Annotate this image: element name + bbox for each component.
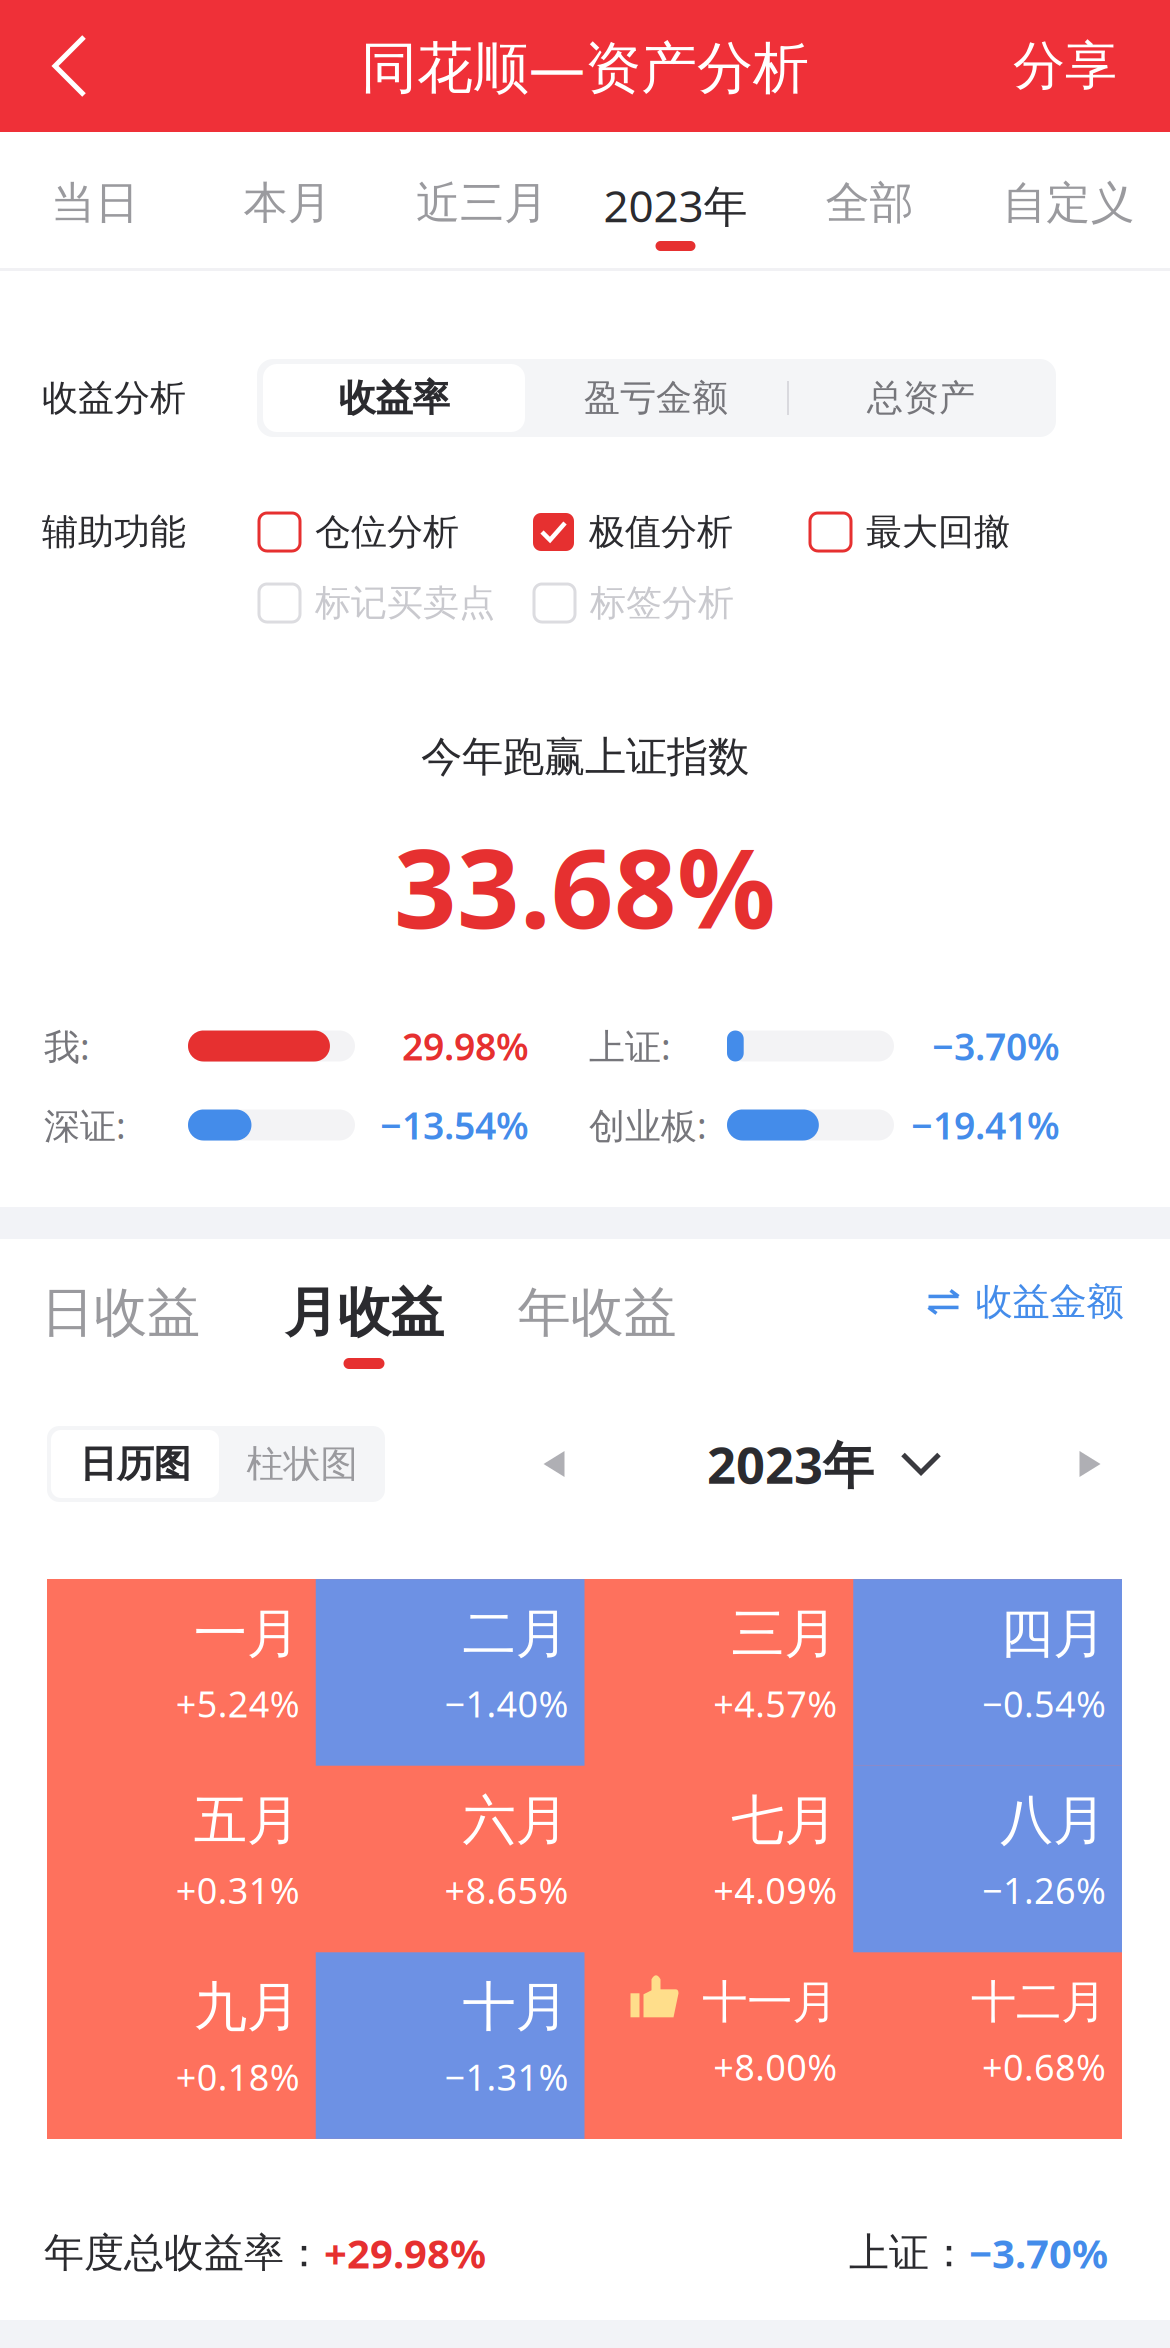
staticText: 五月: [194, 1788, 300, 1853]
staticText: 辅助功能: [42, 510, 186, 554]
staticText: 收益率: [338, 375, 449, 421]
button[interactable]: 极值分析: [533, 503, 810, 561]
staticText: 六月: [462, 1788, 568, 1853]
button[interactable]: 月收益: [283, 1269, 445, 1381]
staticText: −3.70%: [932, 1021, 1060, 1071]
staticText: 日收益: [41, 1280, 200, 1345]
button[interactable]: 八月: [853, 1766, 1122, 1952]
staticText: 二月: [462, 1601, 568, 1667]
button[interactable]: 柱状图: [219, 1430, 385, 1498]
staticText: 七月: [731, 1788, 837, 1853]
button[interactable]: 收益金额: [925, 1269, 1170, 1381]
staticText: −1.40%: [444, 1680, 568, 1727]
button[interactable]: 日历图: [51, 1430, 219, 1498]
staticText: 29.98%: [402, 1021, 529, 1071]
button[interactable]: 总资产: [789, 364, 1053, 432]
staticText: 标记买卖点: [315, 581, 495, 625]
staticText: 极值分析: [589, 510, 733, 554]
button[interactable]: 标记买卖点: [259, 574, 534, 632]
button[interactable]: 盈亏金额: [525, 364, 787, 432]
staticText: 年度总收益率：: [44, 2228, 324, 2277]
staticText: 月收益: [284, 1280, 443, 1345]
button[interactable]: Back: [0, 0, 180, 132]
staticText: 日历图: [79, 1441, 190, 1487]
button[interactable]: 日收益: [38, 1269, 203, 1381]
button[interactable]: 最大回撤: [810, 503, 1090, 561]
staticText: 今年跑赢上证指数: [421, 732, 749, 782]
staticText: 标签分析: [590, 581, 734, 625]
staticText: −13.54%: [380, 1100, 529, 1150]
staticText: 分享: [1013, 34, 1117, 98]
button[interactable]: 分享: [990, 0, 1170, 132]
staticText: 盈亏金额: [584, 376, 728, 420]
staticText: 深证:: [44, 1101, 126, 1149]
staticText: 十一月: [702, 1974, 837, 2030]
staticText: 33.68%: [394, 813, 776, 959]
staticText: −0.54%: [982, 1680, 1106, 1727]
button[interactable]: 标签分析: [534, 574, 811, 632]
button[interactable]: 本月: [190, 133, 385, 267]
button[interactable]: 当日: [0, 133, 190, 267]
staticText: 上证:: [589, 1022, 671, 1070]
button[interactable]: 五月: [47, 1766, 316, 1952]
staticText: 柱状图: [246, 1441, 357, 1487]
staticText: 十二月: [971, 1974, 1106, 2030]
button[interactable]: 十月: [316, 1952, 585, 2139]
button[interactable]: 十二月: [853, 1952, 1122, 2139]
staticText: 收益金额: [975, 1279, 1123, 1325]
staticText: 自定义: [1002, 176, 1134, 230]
staticText: +0.18%: [176, 2053, 300, 2101]
staticText: 一月: [194, 1601, 300, 1667]
staticText: +4.57%: [713, 1680, 837, 1727]
staticText: 上证：: [849, 2228, 969, 2277]
staticText: 当日: [51, 176, 139, 230]
staticText: 2023年: [603, 176, 747, 234]
staticText: 总资产: [867, 376, 975, 420]
staticText: 2023年: [707, 1430, 874, 1498]
staticText: 最大回撤: [866, 510, 1010, 554]
staticText: +0.68%: [982, 2043, 1106, 2091]
button[interactable]: 自定义: [967, 133, 1170, 267]
button[interactable]: 收益率: [263, 364, 525, 432]
staticText: +4.09%: [713, 1866, 837, 1914]
staticText: 十月: [462, 1974, 568, 2040]
button[interactable]: Previous year: [516, 1426, 592, 1502]
button[interactable]: 年收益: [514, 1269, 680, 1381]
staticText: −1.26%: [982, 1866, 1106, 1914]
staticText: 同花顺—资产分析: [361, 29, 809, 103]
button[interactable]: 二月: [316, 1579, 585, 1766]
button[interactable]: 近三月: [385, 133, 579, 267]
staticText: −1.31%: [444, 2053, 568, 2101]
button[interactable]: 全部: [772, 133, 967, 267]
button[interactable]: 一月: [47, 1579, 316, 1766]
staticText: −19.41%: [911, 1100, 1060, 1150]
button[interactable]: 九月: [47, 1952, 316, 2139]
staticText: 全部: [825, 176, 913, 230]
staticText: 近三月: [416, 176, 548, 230]
staticText: +29.98%: [324, 2226, 486, 2279]
button[interactable]: 七月: [584, 1766, 853, 1952]
button[interactable]: 2023年: [707, 1426, 942, 1502]
staticText: 本月: [243, 176, 331, 230]
staticText: +8.65%: [444, 1866, 568, 1914]
button[interactable]: 十一月: [584, 1952, 853, 2139]
staticText: +5.24%: [176, 1680, 300, 1727]
staticText: 我:: [44, 1022, 90, 1070]
staticText: +8.00%: [713, 2043, 837, 2091]
staticText: 仓位分析: [315, 510, 459, 554]
staticText: 四月: [1000, 1601, 1106, 1667]
staticText: +0.31%: [176, 1866, 300, 1914]
button[interactable]: 2023年: [579, 133, 772, 267]
button[interactable]: Next year: [1052, 1426, 1128, 1502]
staticText: 八月: [1000, 1788, 1106, 1853]
button[interactable]: 六月: [316, 1766, 585, 1952]
button[interactable]: 三月: [584, 1579, 853, 1766]
staticText: −3.70%: [969, 2226, 1108, 2279]
staticText: 九月: [194, 1974, 300, 2040]
button[interactable]: 四月: [853, 1579, 1122, 1766]
staticText: 年收益: [517, 1280, 676, 1345]
button[interactable]: 仓位分析: [259, 503, 533, 561]
staticText: 三月: [731, 1601, 837, 1667]
staticText: 创业板:: [589, 1101, 707, 1149]
staticText: 收益分析: [42, 376, 186, 420]
